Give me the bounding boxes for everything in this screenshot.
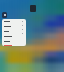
button[interactable]	[2, 39, 26, 44]
button[interactable]: Widget	[30, 5, 36, 12]
button[interactable]: App icon	[2, 12, 7, 18]
button[interactable]	[2, 34, 26, 39]
button[interactable]	[2, 29, 26, 34]
button[interactable]	[2, 44, 26, 46]
button[interactable]	[2, 24, 26, 29]
button[interactable]	[2, 19, 26, 24]
